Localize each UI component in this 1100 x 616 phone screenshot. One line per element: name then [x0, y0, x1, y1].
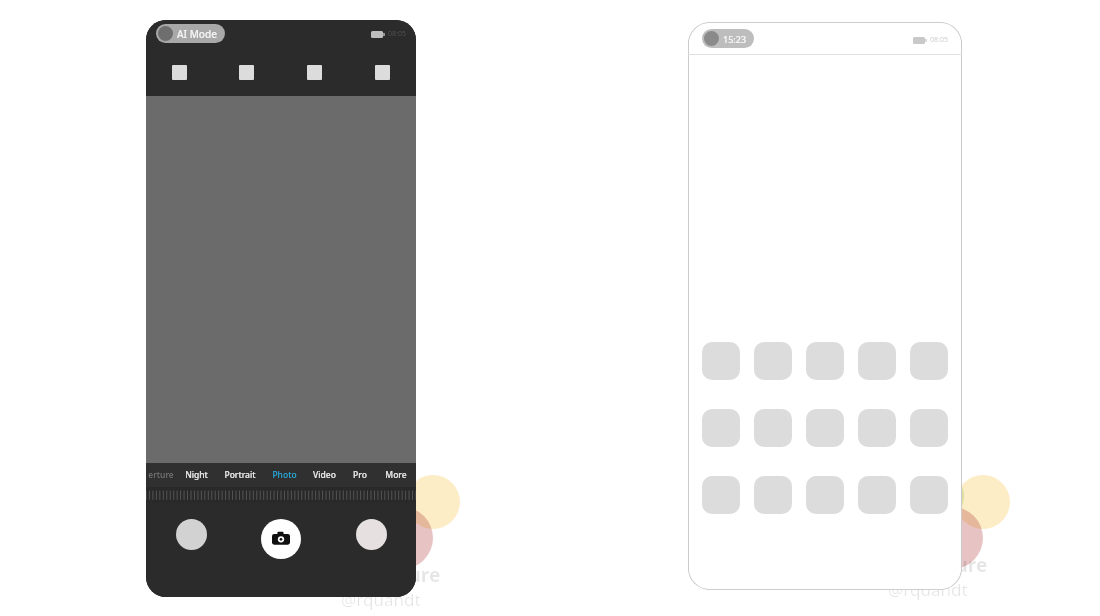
- staticText: WinFuture: [888, 552, 988, 578]
- button[interactable]: AI Mode: [156, 24, 225, 43]
- button[interactable]: Flash: [146, 48, 213, 96]
- staticText: Photo: [272, 469, 297, 481]
- staticText: @rquandt: [888, 578, 968, 601]
- staticText: WinFuture: [341, 562, 441, 588]
- staticText: @rquandt: [341, 588, 421, 611]
- button[interactable]: erture: [146, 463, 176, 487]
- button[interactable]: Portrait: [216, 463, 264, 487]
- button[interactable]: App 1: [702, 409, 740, 447]
- button[interactable]: Gallery: [146, 519, 236, 579]
- button[interactable]: App 4: [858, 476, 896, 514]
- button[interactable]: App 3: [806, 409, 844, 447]
- staticText: Portrait: [224, 469, 256, 481]
- button[interactable]: App 5: [910, 409, 948, 447]
- button[interactable]: App 4: [858, 342, 896, 380]
- staticText: AI Mode: [177, 27, 217, 41]
- button[interactable]: App 2: [754, 342, 792, 380]
- button[interactable]: Switch camera: [326, 519, 416, 579]
- button[interactable]: App 4: [858, 409, 896, 447]
- button[interactable]: App 3: [806, 342, 844, 380]
- button[interactable]: Pro: [344, 463, 376, 487]
- button[interactable]: App 2: [754, 409, 792, 447]
- button[interactable]: Photo: [264, 463, 304, 487]
- button[interactable]: App 2: [754, 476, 792, 514]
- button[interactable]: App 3: [806, 476, 844, 514]
- button[interactable]: Shutter: [236, 519, 326, 579]
- button[interactable]: App 5: [910, 342, 948, 380]
- button[interactable]: App 5: [910, 476, 948, 514]
- staticText: Video: [313, 469, 336, 481]
- staticText: Pro: [353, 469, 367, 481]
- button[interactable]: Night: [176, 463, 216, 487]
- staticText: 08:05: [930, 35, 948, 45]
- button[interactable]: App 1: [702, 476, 740, 514]
- staticText: Night: [185, 469, 208, 481]
- button[interactable]: App 1: [702, 342, 740, 380]
- button[interactable]: 15:23: [702, 29, 754, 48]
- button[interactable]: Timer: [280, 48, 348, 96]
- button[interactable]: More: [376, 463, 416, 487]
- button[interactable]: HDR: [213, 48, 280, 96]
- staticText: erture: [148, 469, 174, 481]
- button[interactable]: Settings: [348, 48, 416, 96]
- staticText: 15:23: [723, 33, 747, 45]
- staticText: More: [385, 469, 407, 481]
- staticText: 08:05: [388, 29, 406, 39]
- button[interactable]: Video: [304, 463, 344, 487]
